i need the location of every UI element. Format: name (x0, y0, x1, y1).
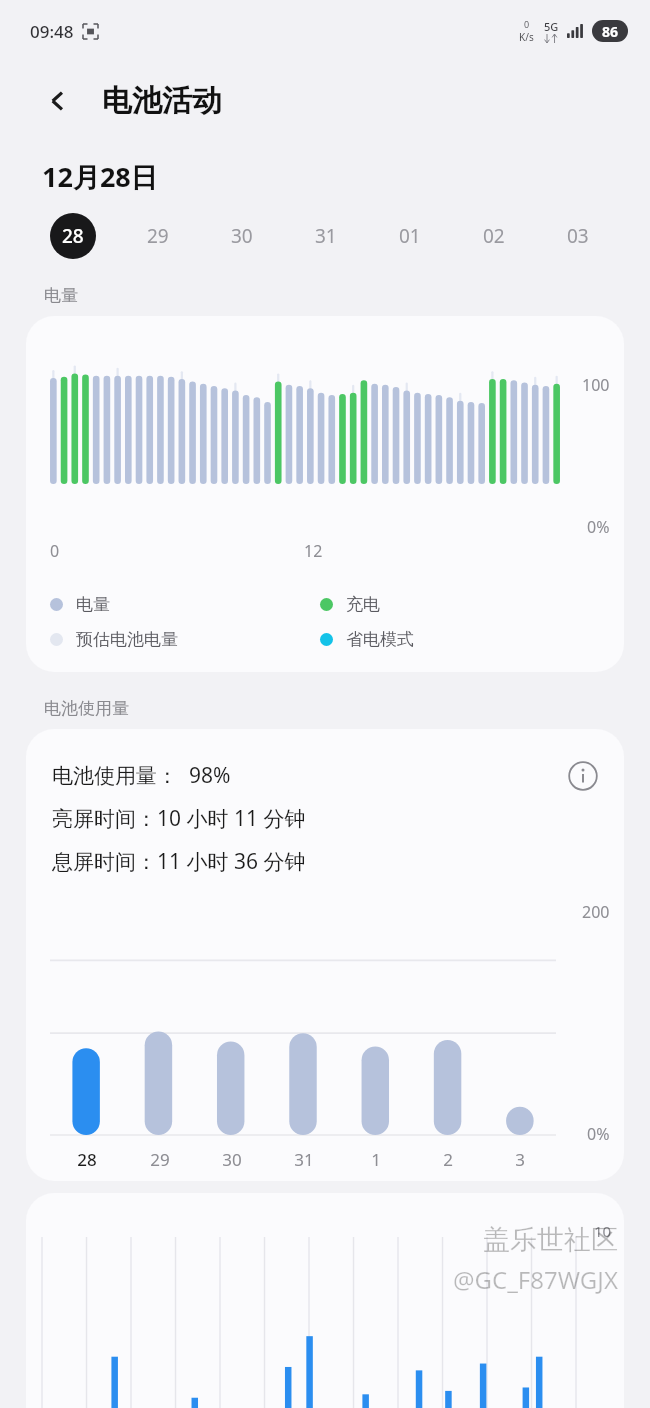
button[interactable]: Back (34, 77, 82, 125)
staticText: 86 (602, 22, 619, 41)
staticText: 5G (544, 19, 559, 34)
staticText: 01 (399, 223, 421, 249)
button[interactable]: 31 (284, 209, 368, 263)
staticText: 0% (587, 1123, 610, 1145)
button[interactable]: 电池使用量： 98% (26, 729, 624, 1181)
staticText: 28 (62, 223, 84, 249)
staticText: 0 (524, 18, 530, 30)
button[interactable]: 29 (115, 209, 200, 263)
staticText: 充电 (346, 594, 380, 615)
button[interactable]: 02 (452, 209, 536, 263)
staticText: 200 (582, 901, 610, 923)
staticText: 1 (371, 1148, 381, 1171)
staticText: 2 (443, 1148, 453, 1171)
button[interactable]: 100 (26, 316, 624, 672)
staticText: 30 (231, 223, 253, 249)
button[interactable]: Info (560, 753, 606, 799)
staticText: 29 (147, 223, 169, 249)
staticText: 0 (50, 540, 60, 562)
staticText: 03 (567, 223, 589, 249)
staticText: 电量 (44, 285, 78, 306)
staticText: 息屏时间：11 小时 36 分钟 (52, 847, 306, 876)
staticText: 电池使用量 (44, 698, 129, 719)
staticText: 02 (483, 223, 505, 249)
staticText: 30 (222, 1148, 242, 1171)
staticText: 12 (304, 540, 323, 562)
staticText: 31 (294, 1148, 314, 1171)
staticText: 0% (587, 516, 610, 538)
staticText: 3 (515, 1148, 525, 1171)
staticText: 28 (77, 1148, 97, 1171)
staticText: 电池使用量： 98% (52, 761, 231, 790)
button[interactable]: 28 (30, 209, 115, 263)
staticText: 10 (594, 1221, 612, 1241)
staticText: 09:48 (30, 20, 74, 43)
button[interactable]: 03 (536, 209, 620, 263)
staticText: 预估电池电量 (76, 629, 178, 650)
button[interactable]: 01 (368, 209, 452, 263)
staticText: 省电模式 (346, 629, 414, 650)
staticText: 29 (150, 1148, 170, 1171)
button[interactable]: 30 (200, 209, 284, 263)
staticText: 电量 (76, 594, 110, 615)
button[interactable]: 10 (26, 1193, 624, 1408)
staticText: K/s (519, 30, 534, 44)
staticText: 12月28日 (42, 158, 158, 195)
staticText: 100 (582, 374, 610, 396)
staticText: 31 (315, 223, 337, 249)
staticText: 电池活动 (102, 82, 222, 120)
staticText: 盖乐世社区 (483, 1223, 618, 1257)
staticText: 亮屏时间：10 小时 11 分钟 (52, 804, 306, 833)
staticText: @GC_F87WGJX (453, 1263, 618, 1296)
